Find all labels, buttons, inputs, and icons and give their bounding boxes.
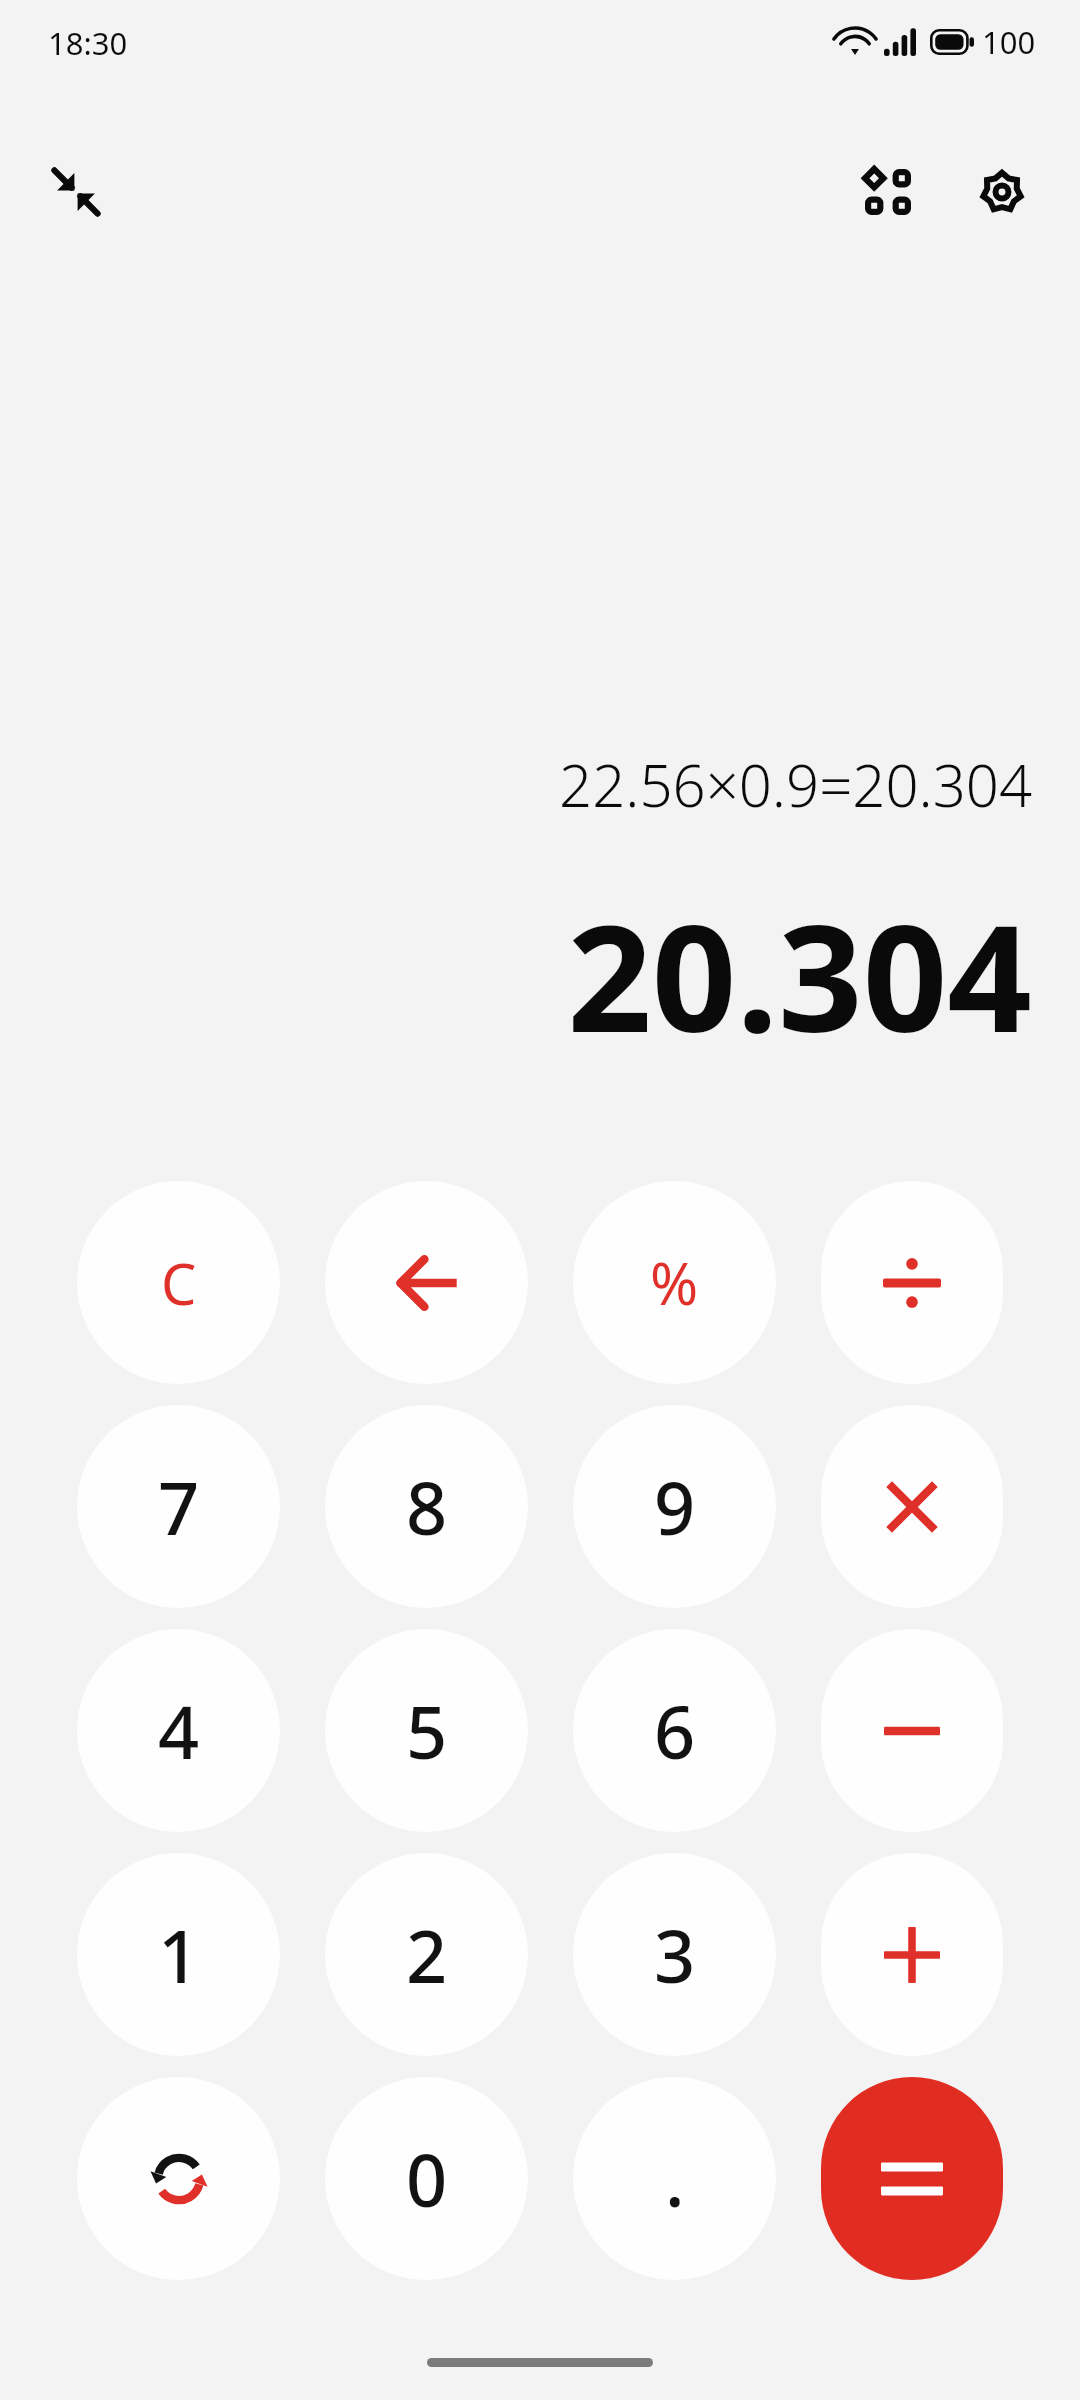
button[interactable]: Convert — [77, 2077, 280, 2280]
staticText: 4 — [158, 1682, 200, 1780]
staticText: C — [161, 1245, 197, 1321]
button[interactable]: 0 — [325, 2077, 528, 2280]
staticText: 5 — [406, 1682, 448, 1780]
button[interactable]: Collapse — [28, 150, 124, 234]
staticText: 9 — [654, 1458, 696, 1556]
button[interactable] — [821, 1629, 1003, 1832]
staticText: 6 — [654, 1682, 696, 1780]
button[interactable] — [821, 1405, 1003, 1608]
button[interactable]: 6 — [573, 1629, 776, 1832]
staticText: 100 — [982, 21, 1036, 63]
button[interactable]: 1 — [77, 1853, 280, 2056]
staticText: 8 — [406, 1458, 448, 1556]
button[interactable]: Backspace — [325, 1181, 528, 1384]
staticText: 1 — [158, 1906, 200, 2004]
button[interactable] — [821, 1181, 1003, 1384]
button[interactable]: Settings — [954, 150, 1050, 234]
button[interactable]: 7 — [77, 1405, 280, 1608]
staticText: 3 — [654, 1906, 696, 2004]
button[interactable]: 3 — [573, 1853, 776, 2056]
staticText: 22.56×0.9=20.304 — [0, 745, 1032, 824]
button[interactable]: . — [573, 2077, 776, 2280]
staticText: 7 — [158, 1458, 200, 1556]
staticText: 18:30 — [48, 22, 128, 64]
button[interactable] — [821, 2077, 1003, 2280]
button[interactable]: C — [77, 1181, 280, 1384]
button[interactable] — [821, 1853, 1003, 2056]
staticText: 0 — [406, 2130, 448, 2228]
button[interactable]: 5 — [325, 1629, 528, 1832]
button[interactable]: Unit converter — [840, 150, 936, 234]
button[interactable]: 8 — [325, 1405, 528, 1608]
button[interactable]: 2 — [325, 1853, 528, 2056]
button[interactable]: 4 — [77, 1629, 280, 1832]
staticText: % — [650, 1243, 699, 1322]
button[interactable]: % — [573, 1181, 776, 1384]
staticText: . — [665, 2130, 685, 2228]
button[interactable]: 9 — [573, 1405, 776, 1608]
staticText: 2 — [406, 1906, 448, 2004]
staticText: 20.304 — [0, 874, 1032, 1076]
